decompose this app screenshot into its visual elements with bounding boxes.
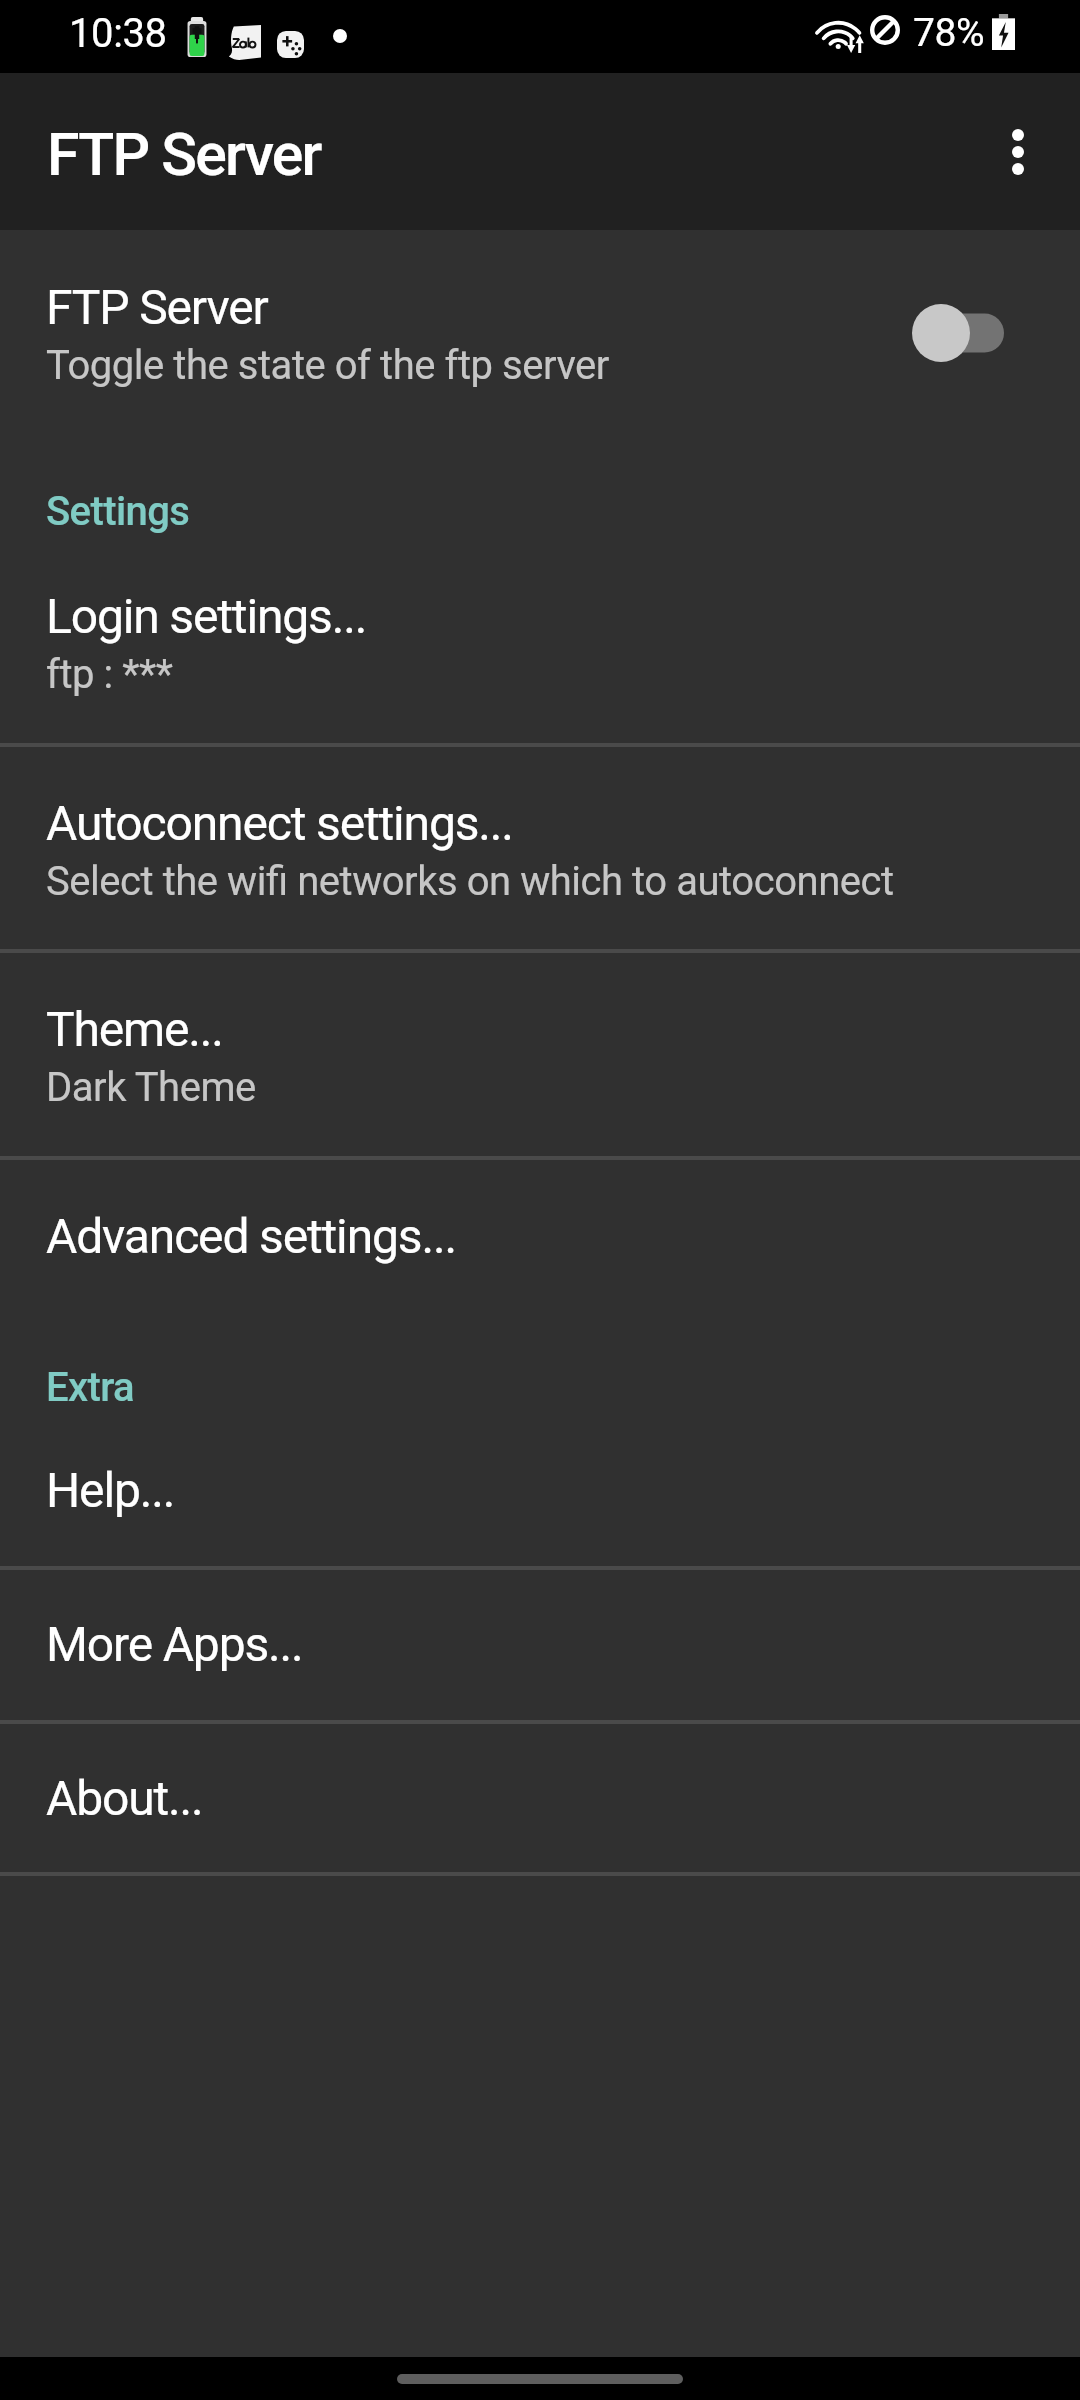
staticText: Select the wifi networks on which to aut… — [46, 858, 894, 905]
button[interactable]: About... — [0, 1720, 1080, 1872]
staticText: Settings — [46, 488, 190, 535]
staticText: FTP Server — [46, 279, 268, 335]
button[interactable]: FTP Server — [0, 230, 1080, 437]
button[interactable]: Toggle FTP server — [893, 263, 1023, 383]
staticText: More Apps... — [46, 1616, 303, 1672]
staticText: Extra — [46, 1364, 135, 1411]
staticText: Advanced settings... — [46, 1208, 456, 1264]
button[interactable]: Login settings... — [0, 538, 1080, 745]
button[interactable]: More Apps... — [0, 1566, 1080, 1720]
staticText: Toggle the state of the ftp server — [46, 342, 609, 389]
staticText: ftp : *** — [46, 651, 173, 698]
staticText: Autoconnect settings... — [46, 795, 513, 851]
button[interactable]: Autoconnect settings... — [0, 745, 1080, 951]
button[interactable]: More options — [970, 112, 1066, 208]
button[interactable]: Theme... — [0, 951, 1080, 1158]
staticText: 78% — [913, 10, 985, 56]
staticText: Help... — [46, 1462, 175, 1518]
staticText: 10:38 — [69, 10, 167, 57]
staticText: Login settings... — [46, 588, 367, 644]
staticText: About... — [46, 1770, 203, 1826]
staticText: Theme... — [46, 1001, 223, 1057]
button[interactable]: Help... — [0, 1412, 1080, 1566]
staticText: FTP Server — [47, 120, 321, 189]
staticText: Dark Theme — [46, 1064, 256, 1111]
button[interactable]: Advanced settings... — [0, 1158, 1080, 1311]
